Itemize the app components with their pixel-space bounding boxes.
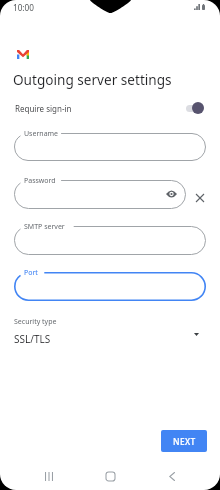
button[interactable]: Back bbox=[158, 462, 186, 490]
button[interactable]: NEXT bbox=[161, 430, 207, 452]
button[interactable]: Home bbox=[96, 462, 124, 490]
button[interactable]: Require sign-in bbox=[186, 102, 204, 114]
button[interactable]: Security type bbox=[0, 314, 220, 350]
staticText: Outgoing server settings bbox=[13, 70, 172, 89]
staticText: 10:00 bbox=[13, 2, 34, 13]
staticText: Security type bbox=[14, 317, 57, 327]
button[interactable]: SMTP server bbox=[14, 226, 206, 255]
staticText: Port bbox=[24, 268, 38, 278]
staticText: NEXT bbox=[173, 436, 196, 447]
button[interactable]: Username bbox=[14, 133, 206, 161]
staticText: SMTP server bbox=[24, 222, 65, 232]
button[interactable]: Clear password bbox=[190, 188, 209, 207]
staticText: SSL/TLS bbox=[14, 332, 51, 346]
button[interactable]: Recent apps bbox=[35, 462, 63, 490]
staticText: Require sign-in bbox=[15, 103, 72, 114]
button[interactable]: Require sign-in bbox=[0, 97, 220, 119]
staticText: Username bbox=[24, 129, 59, 139]
staticText: Password bbox=[24, 176, 56, 186]
button[interactable]: Password bbox=[14, 180, 186, 209]
button[interactable]: Port bbox=[14, 272, 206, 301]
button[interactable]: Show password bbox=[164, 186, 179, 201]
